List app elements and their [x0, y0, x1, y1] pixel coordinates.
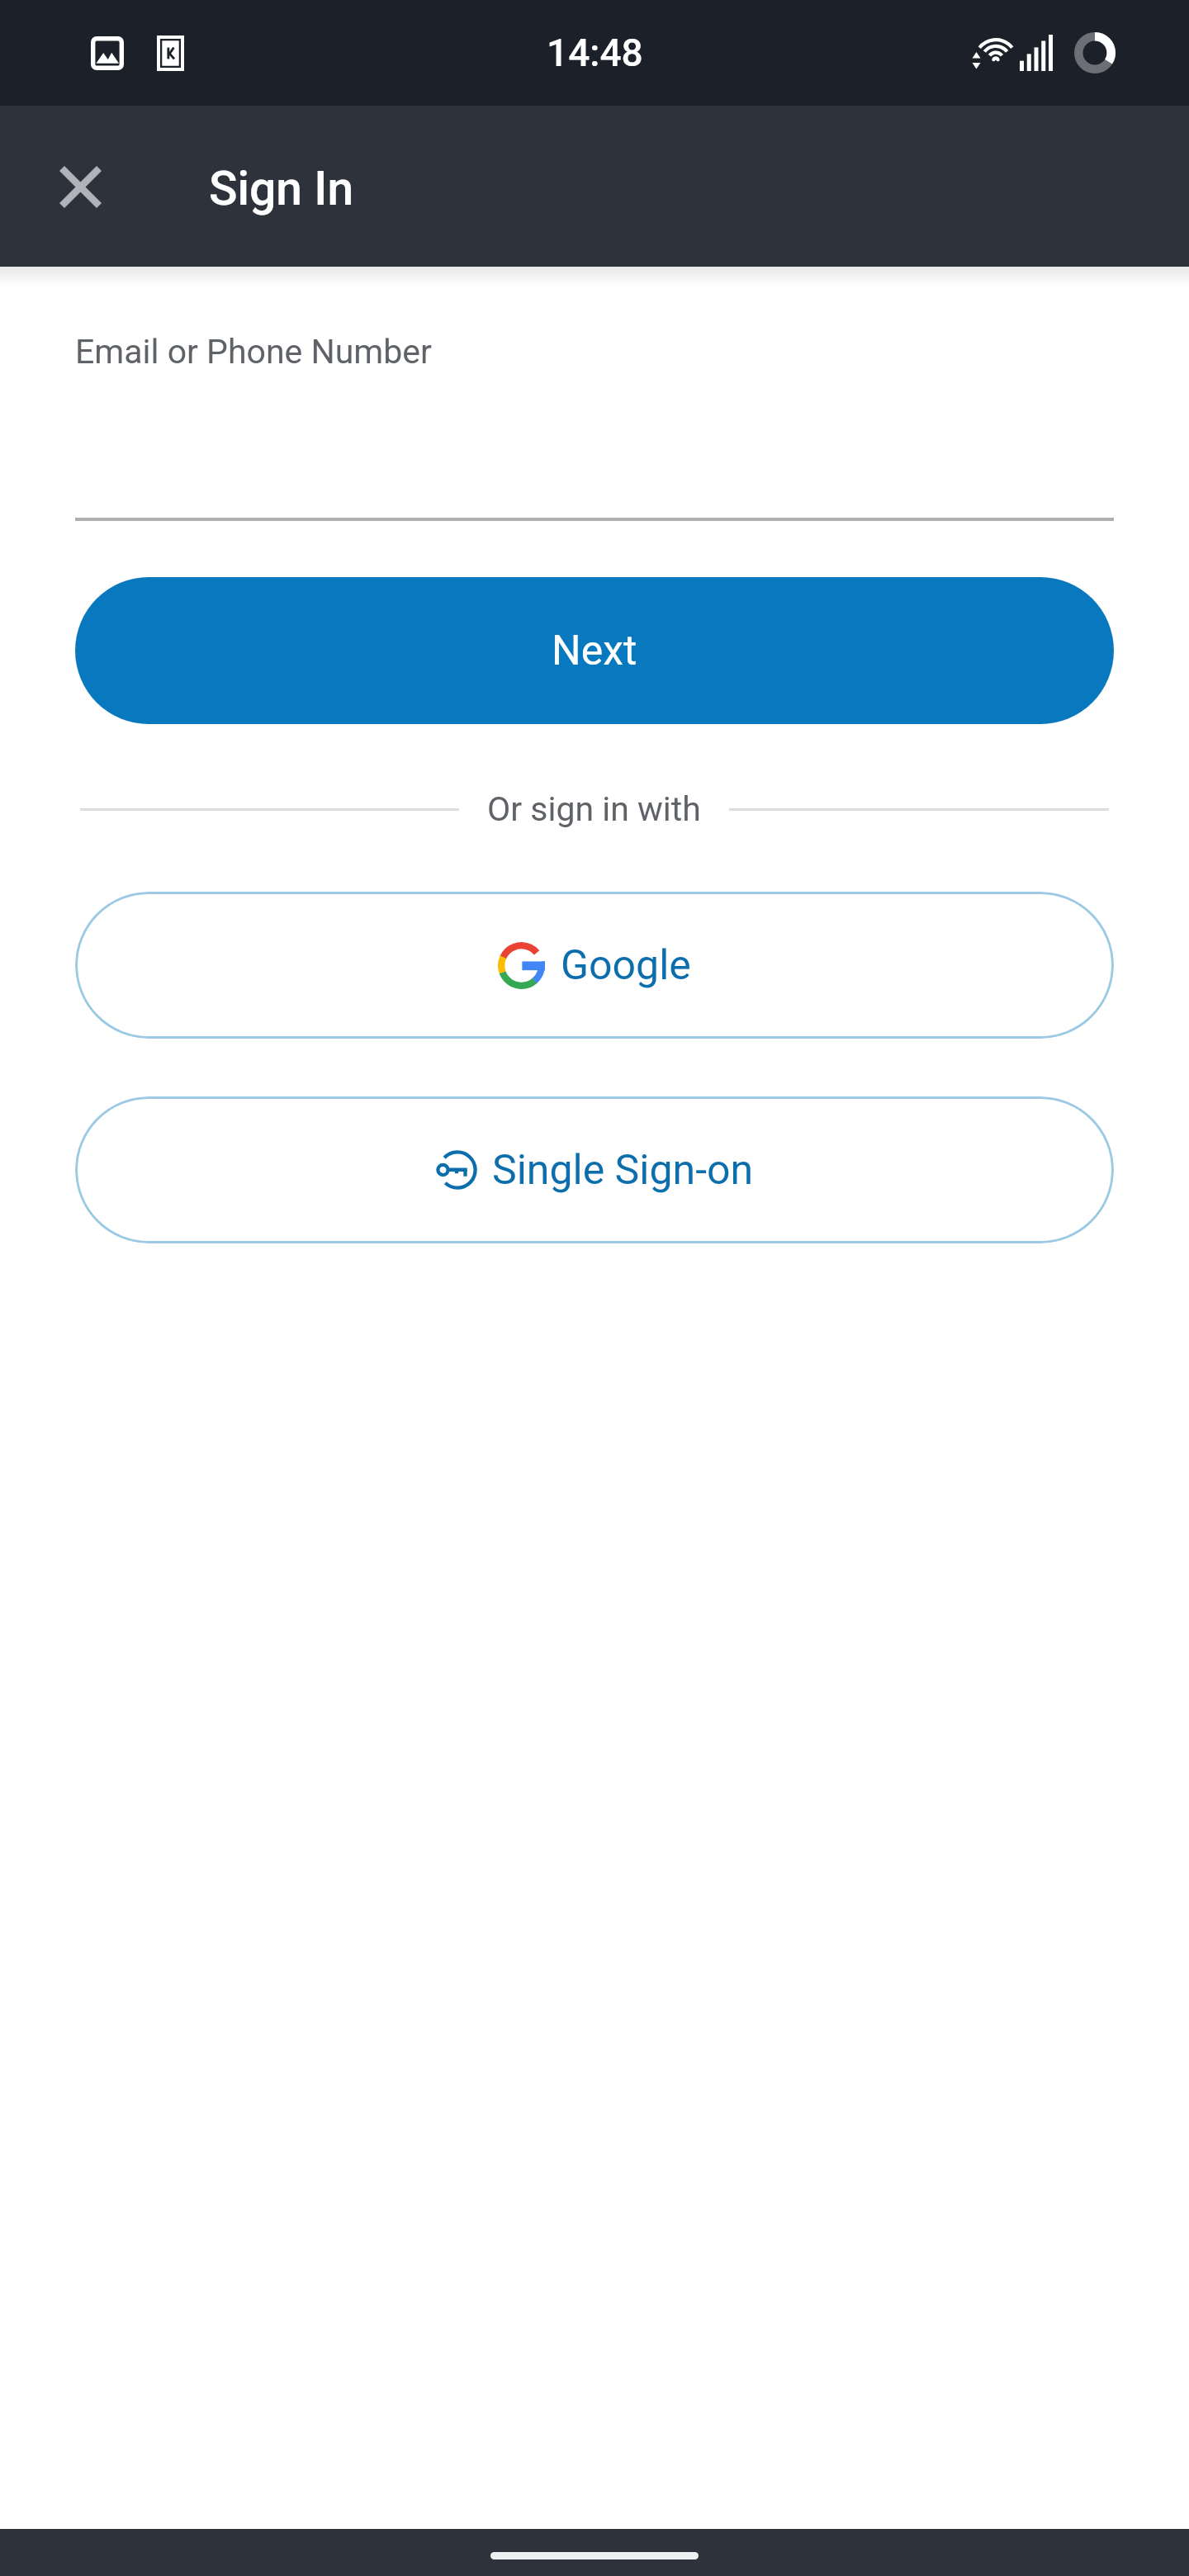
button[interactable]: Email or Phone Number — [75, 267, 1114, 521]
staticText: Next — [552, 627, 637, 675]
staticText: Sign In — [209, 161, 354, 216]
staticText: Email or Phone Number — [75, 332, 432, 372]
staticText: 14:48 — [547, 31, 643, 75]
staticText: Google — [561, 941, 691, 990]
button[interactable]: Next — [75, 577, 1114, 724]
staticText: Or sign in with — [487, 789, 701, 829]
button[interactable]: Single Sign-on — [75, 1096, 1114, 1243]
button[interactable]: Close — [40, 147, 120, 226]
staticText: Single Sign-on — [492, 1146, 754, 1195]
button[interactable]: Google — [75, 892, 1114, 1039]
